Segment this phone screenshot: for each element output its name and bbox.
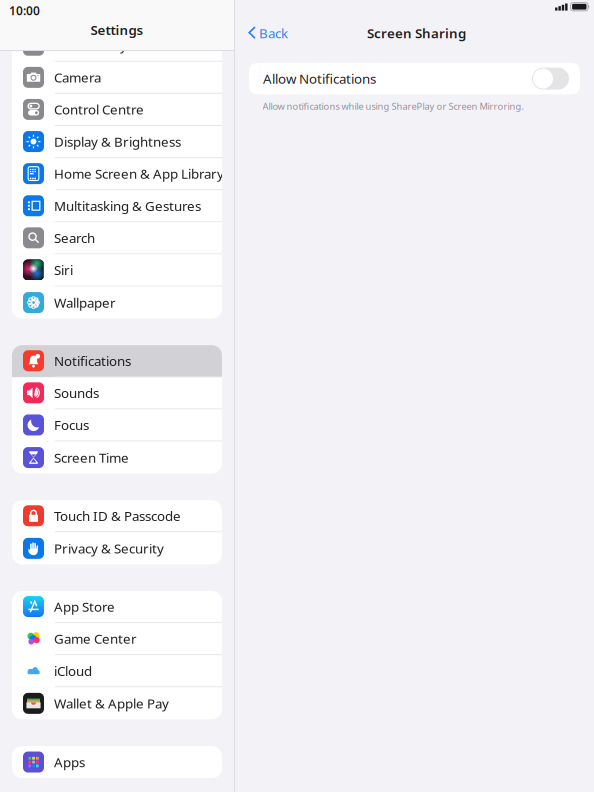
button[interactable]: App Store (12, 591, 222, 623)
staticText: Game Center (54, 630, 137, 647)
staticText: Control Centre (54, 101, 144, 118)
button[interactable]: Siri (12, 254, 222, 286)
staticText: Screen Sharing (367, 24, 466, 42)
button[interactable]: Touch ID & Passcode (12, 500, 222, 532)
staticText: 10:00 (9, 2, 40, 18)
button[interactable]: Wallpaper (12, 286, 222, 319)
staticText: Wallet & Apple Pay (54, 694, 169, 712)
button[interactable]: Allow Notifications (235, 63, 594, 94)
staticText: Touch ID & Passcode (54, 507, 181, 525)
staticText: iCloud (54, 662, 92, 680)
button[interactable]: Accessibility (12, 30, 222, 62)
staticText: Apps (54, 753, 85, 771)
button[interactable]: Privacy & Security (12, 532, 222, 564)
staticText: Back (259, 24, 288, 42)
button[interactable]: Apps (12, 746, 222, 778)
staticText: Search (54, 229, 95, 247)
staticText: Notifications (54, 352, 131, 370)
button[interactable]: Notifications (12, 345, 222, 377)
button[interactable]: Search (12, 222, 222, 254)
staticText: Wallpaper (54, 294, 116, 311)
staticText: Home Screen & App Library (54, 165, 224, 182)
button[interactable]: Wallet & Apple Pay (12, 687, 222, 719)
button[interactable]: Back (242, 18, 293, 48)
staticText: Sounds (54, 384, 99, 402)
staticText: Screen Time (54, 449, 129, 466)
button[interactable]: Screen Time (12, 441, 222, 474)
staticText: Privacy & Security (54, 539, 164, 557)
staticText: Settings (90, 21, 143, 39)
staticText: Siri (54, 261, 73, 279)
button[interactable]: Control Centre (12, 94, 222, 126)
staticText: Multitasking & Gestures (54, 197, 201, 215)
staticText: App Store (54, 598, 115, 615)
staticText: Accessibility (54, 36, 127, 54)
staticText: Allow notifications while using SharePla… (262, 100, 524, 112)
button[interactable]: Sounds (12, 377, 222, 409)
staticText: Allow Notifications (263, 70, 376, 87)
button[interactable]: iCloud (12, 655, 222, 687)
button[interactable]: Display & Brightness (12, 126, 222, 158)
button[interactable]: Multitasking & Gestures (12, 190, 222, 222)
button[interactable]: Game Center (12, 623, 222, 655)
button[interactable]: Home Screen & App Library (12, 158, 222, 190)
staticText: Focus (54, 416, 89, 434)
button[interactable]: Camera (12, 62, 222, 94)
staticText: Display & Brightness (54, 133, 181, 150)
staticText: Camera (54, 68, 101, 86)
button[interactable]: Focus (12, 409, 222, 441)
